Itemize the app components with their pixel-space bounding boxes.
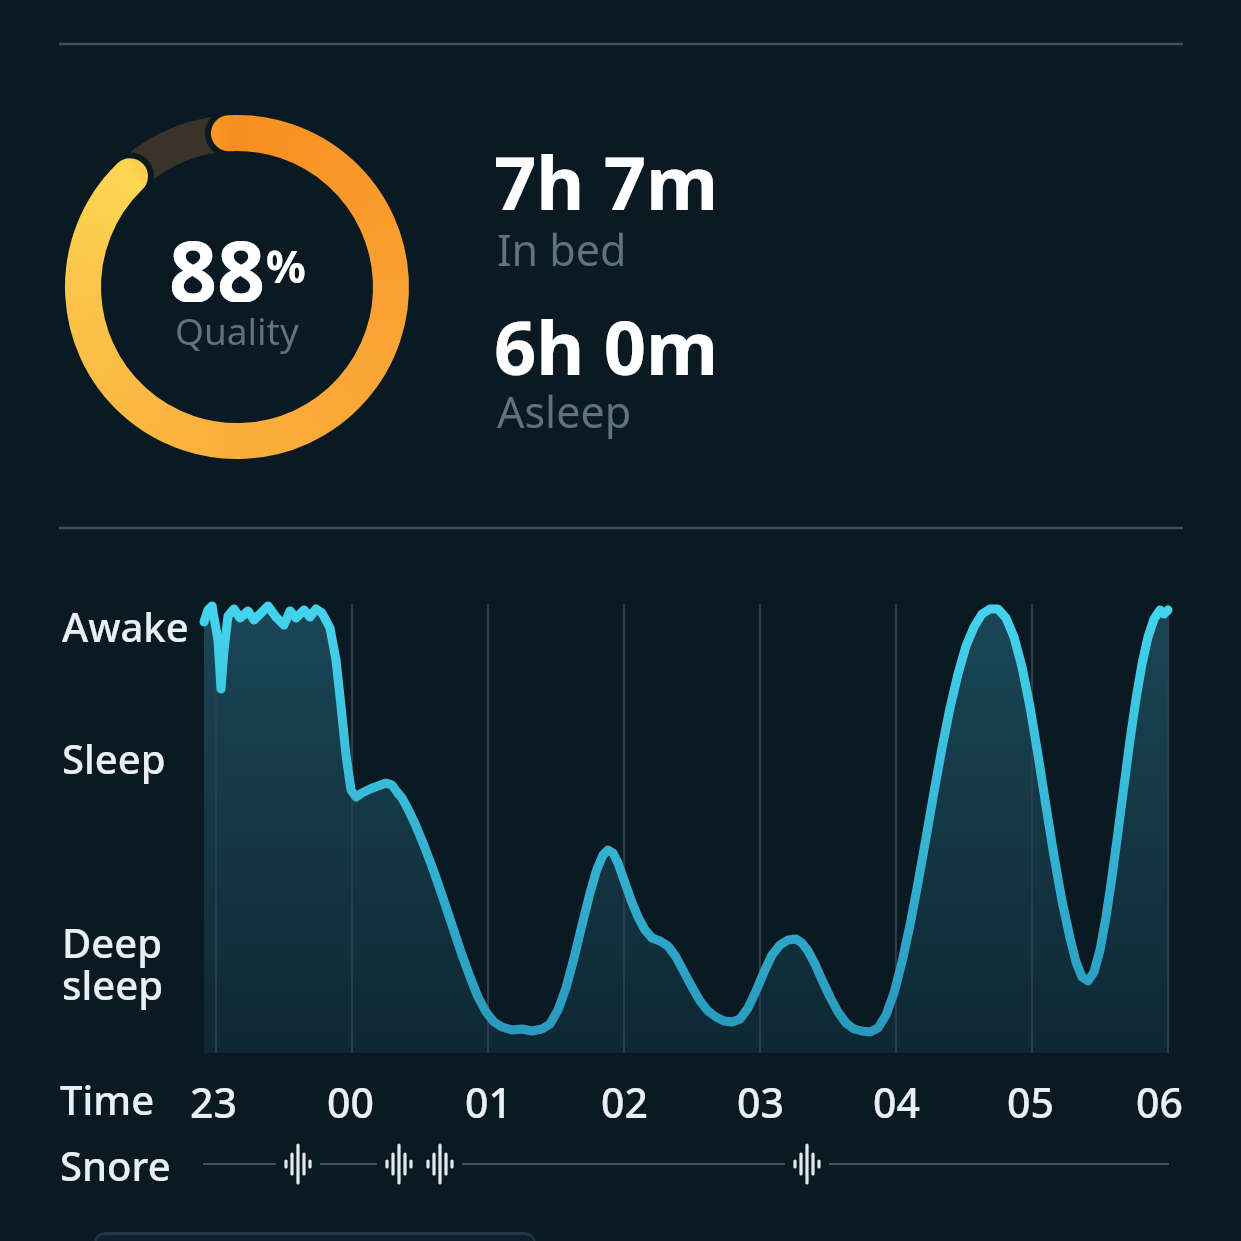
staticText: % [266,236,306,296]
staticText: 6h 0m [494,296,719,397]
staticText: 01 [465,1074,512,1128]
staticText: 00 [327,1074,374,1128]
staticText: Quality [175,305,299,355]
button[interactable] [94,1232,536,1241]
staticText: Time [60,1072,155,1126]
staticText: 03 [737,1074,784,1128]
staticText: 06 [1136,1074,1183,1128]
staticText: In bed [497,220,627,279]
staticText: 04 [873,1074,920,1128]
staticText: 05 [1007,1074,1054,1128]
staticText: Awake [62,599,189,653]
staticText: Deep sleep [62,915,163,1012]
staticText: 23 [190,1074,237,1128]
staticText: Snore [60,1138,171,1192]
staticText: Asleep [497,382,632,441]
staticText: 7h 7m [494,131,719,232]
staticText: 02 [601,1074,648,1128]
staticText: 88 [169,212,266,302]
staticText: Sleep [62,731,166,785]
